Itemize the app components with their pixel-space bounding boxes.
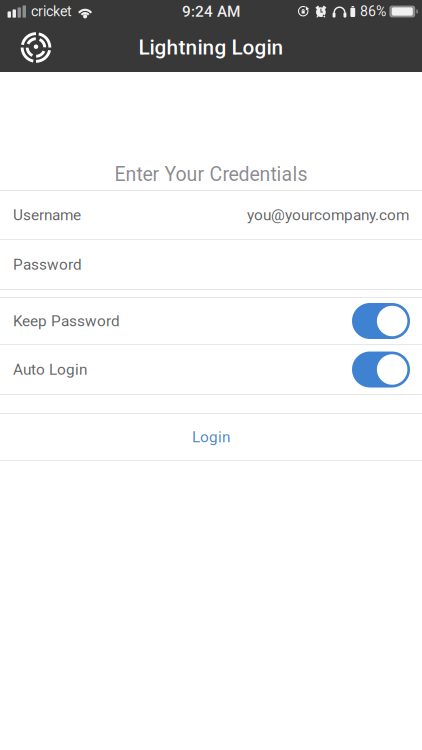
button[interactable]: Menu <box>13 24 59 70</box>
staticText: Password <box>13 255 82 273</box>
button[interactable]: Username <box>0 191 422 239</box>
button[interactable]: Login <box>0 414 422 460</box>
staticText: Login <box>192 428 230 446</box>
button[interactable]: Password <box>0 240 422 289</box>
staticText: 86% <box>360 3 386 20</box>
staticText: Auto Login <box>13 360 87 378</box>
staticText: you@yourcompany.com <box>247 206 409 224</box>
staticText: Username <box>13 206 81 224</box>
staticText: 9:24 AM <box>182 2 240 20</box>
staticText: Enter Your Credentials <box>114 163 307 186</box>
staticText: Keep Password <box>13 312 120 330</box>
button[interactable]: Keep Password <box>0 298 422 344</box>
staticText: Lightning Login <box>138 35 283 60</box>
button[interactable]: Auto Login <box>0 345 422 394</box>
staticText: cricket <box>31 3 72 20</box>
